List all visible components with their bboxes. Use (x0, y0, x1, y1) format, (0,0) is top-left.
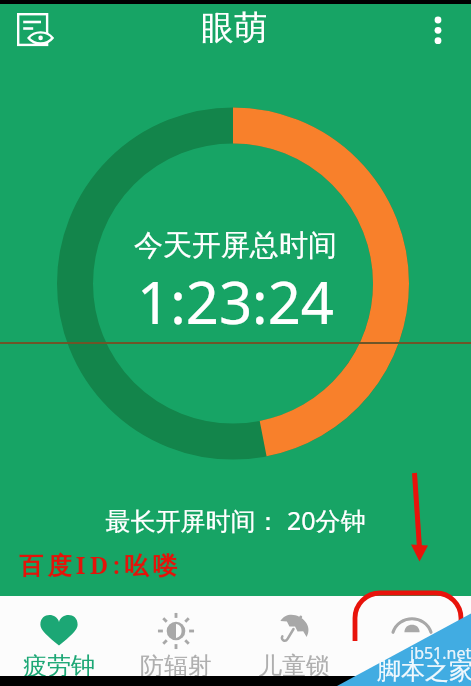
staticText: 脚本之家 (377, 656, 471, 686)
staticText: 眼萌 (201, 7, 267, 49)
staticText: 今天开屏总时间 (0, 227, 471, 264)
staticText: 疲劳钟 (23, 651, 95, 676)
button[interactable]: 疲劳钟 (0, 596, 117, 676)
staticText: 百度ID:吆喽 (19, 548, 182, 581)
button[interactable]: Report (0, 3, 63, 55)
staticText: 儿童锁 (258, 651, 330, 676)
button[interactable]: 儿童锁 (235, 596, 353, 676)
button[interactable]: Eye protection (353, 596, 471, 676)
button[interactable]: More options (405, 3, 471, 55)
staticText: 1:23:24 (0, 262, 471, 341)
staticText: jb51.net (410, 642, 471, 664)
staticText: 防辐射 (140, 651, 212, 676)
staticText: 最长开屏时间： 20分钟 (0, 503, 471, 537)
button[interactable]: 防辐射 (117, 596, 235, 676)
